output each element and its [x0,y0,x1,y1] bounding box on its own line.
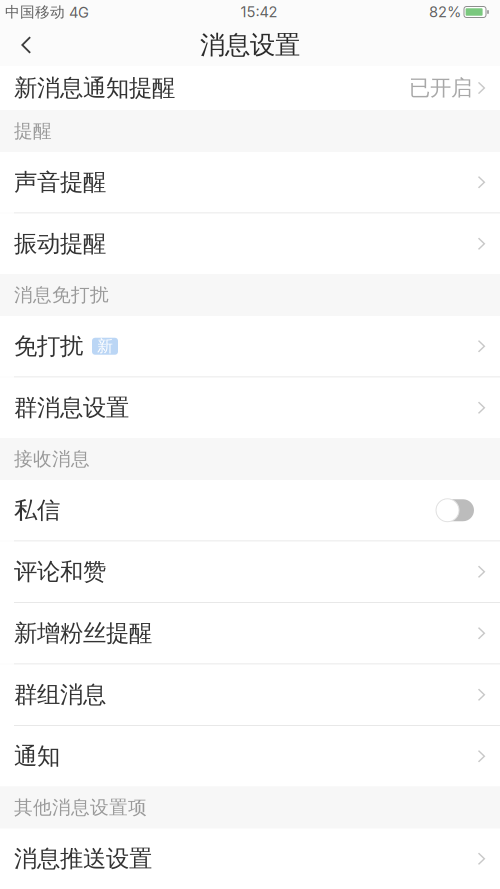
staticText: 群组消息 [14,680,106,709]
button[interactable]: 评论和赞 [0,541,500,602]
staticText: 评论和赞 [14,557,106,586]
button[interactable]: 声音提醒 [0,152,500,212]
staticText: 新消息通知提醒 [14,73,175,103]
staticText: 通知 [14,742,60,771]
button[interactable]: 群消息设置 [0,377,500,438]
button[interactable]: 私信 开关 [436,499,474,522]
staticText: 新 [97,336,113,356]
button[interactable]: 返回 [6,25,46,65]
button[interactable]: 振动提醒 [0,213,500,274]
staticText: 私信 [14,496,60,525]
button[interactable]: 新消息通知提醒 [0,66,500,110]
staticText: 已开启 [409,75,472,101]
button[interactable]: 免打扰 [0,316,500,376]
staticText: 接收消息 [14,447,90,471]
button[interactable]: 通知 [0,726,500,786]
staticText: 声音提醒 [14,168,106,197]
staticText: 消息推送设置 [14,844,152,873]
staticText: 其他消息设置项 [14,796,147,819]
staticText: 振动提醒 [14,229,106,258]
staticText: 新增粉丝提醒 [14,619,152,648]
button[interactable]: 新增粉丝提醒 [0,603,500,663]
staticText: 消息免打扰 [14,283,109,307]
staticText: 82% [429,3,461,21]
button[interactable]: 群组消息 [0,664,500,725]
staticText: 免打扰 [14,332,83,361]
staticText: 群消息设置 [14,393,129,422]
staticText: 中国移动 4G [5,3,89,21]
staticText: 15:42 [240,3,277,21]
button[interactable]: 消息推送设置 [0,828,500,889]
staticText: 提醒 [14,119,52,143]
staticText: 消息设置 [200,29,300,61]
